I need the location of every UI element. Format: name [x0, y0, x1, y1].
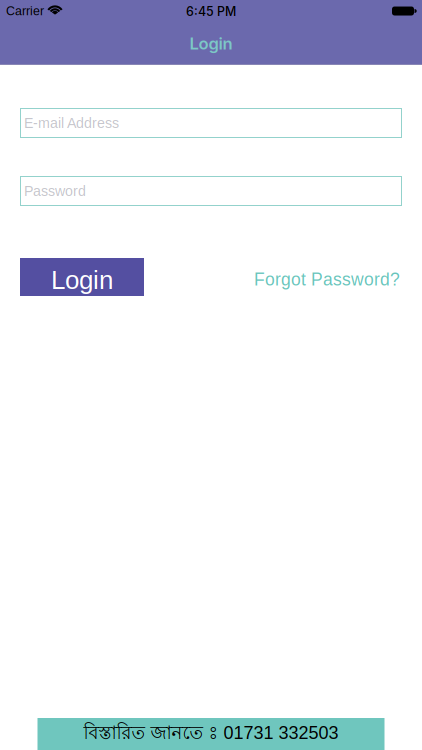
button[interactable]: Forgot Password? — [254, 265, 400, 289]
button[interactable]: E-mail Address — [20, 108, 402, 138]
button[interactable]: Login — [20, 258, 144, 296]
staticText: Forgot Password? — [254, 270, 400, 289]
staticText: Login — [189, 33, 232, 54]
staticText: 6:45 PM — [186, 4, 236, 19]
staticText: Carrier — [6, 4, 44, 18]
staticText: Password — [24, 183, 86, 199]
button[interactable]: Password — [20, 176, 402, 206]
staticText: বিস্তারিত জানতে ঃ 01731 332503 — [83, 721, 338, 747]
staticText: E-mail Address — [24, 115, 119, 131]
staticText: Login — [51, 265, 113, 294]
button[interactable]: বিস্তারিত জানতে ঃ 01731 332503 — [37, 718, 384, 750]
